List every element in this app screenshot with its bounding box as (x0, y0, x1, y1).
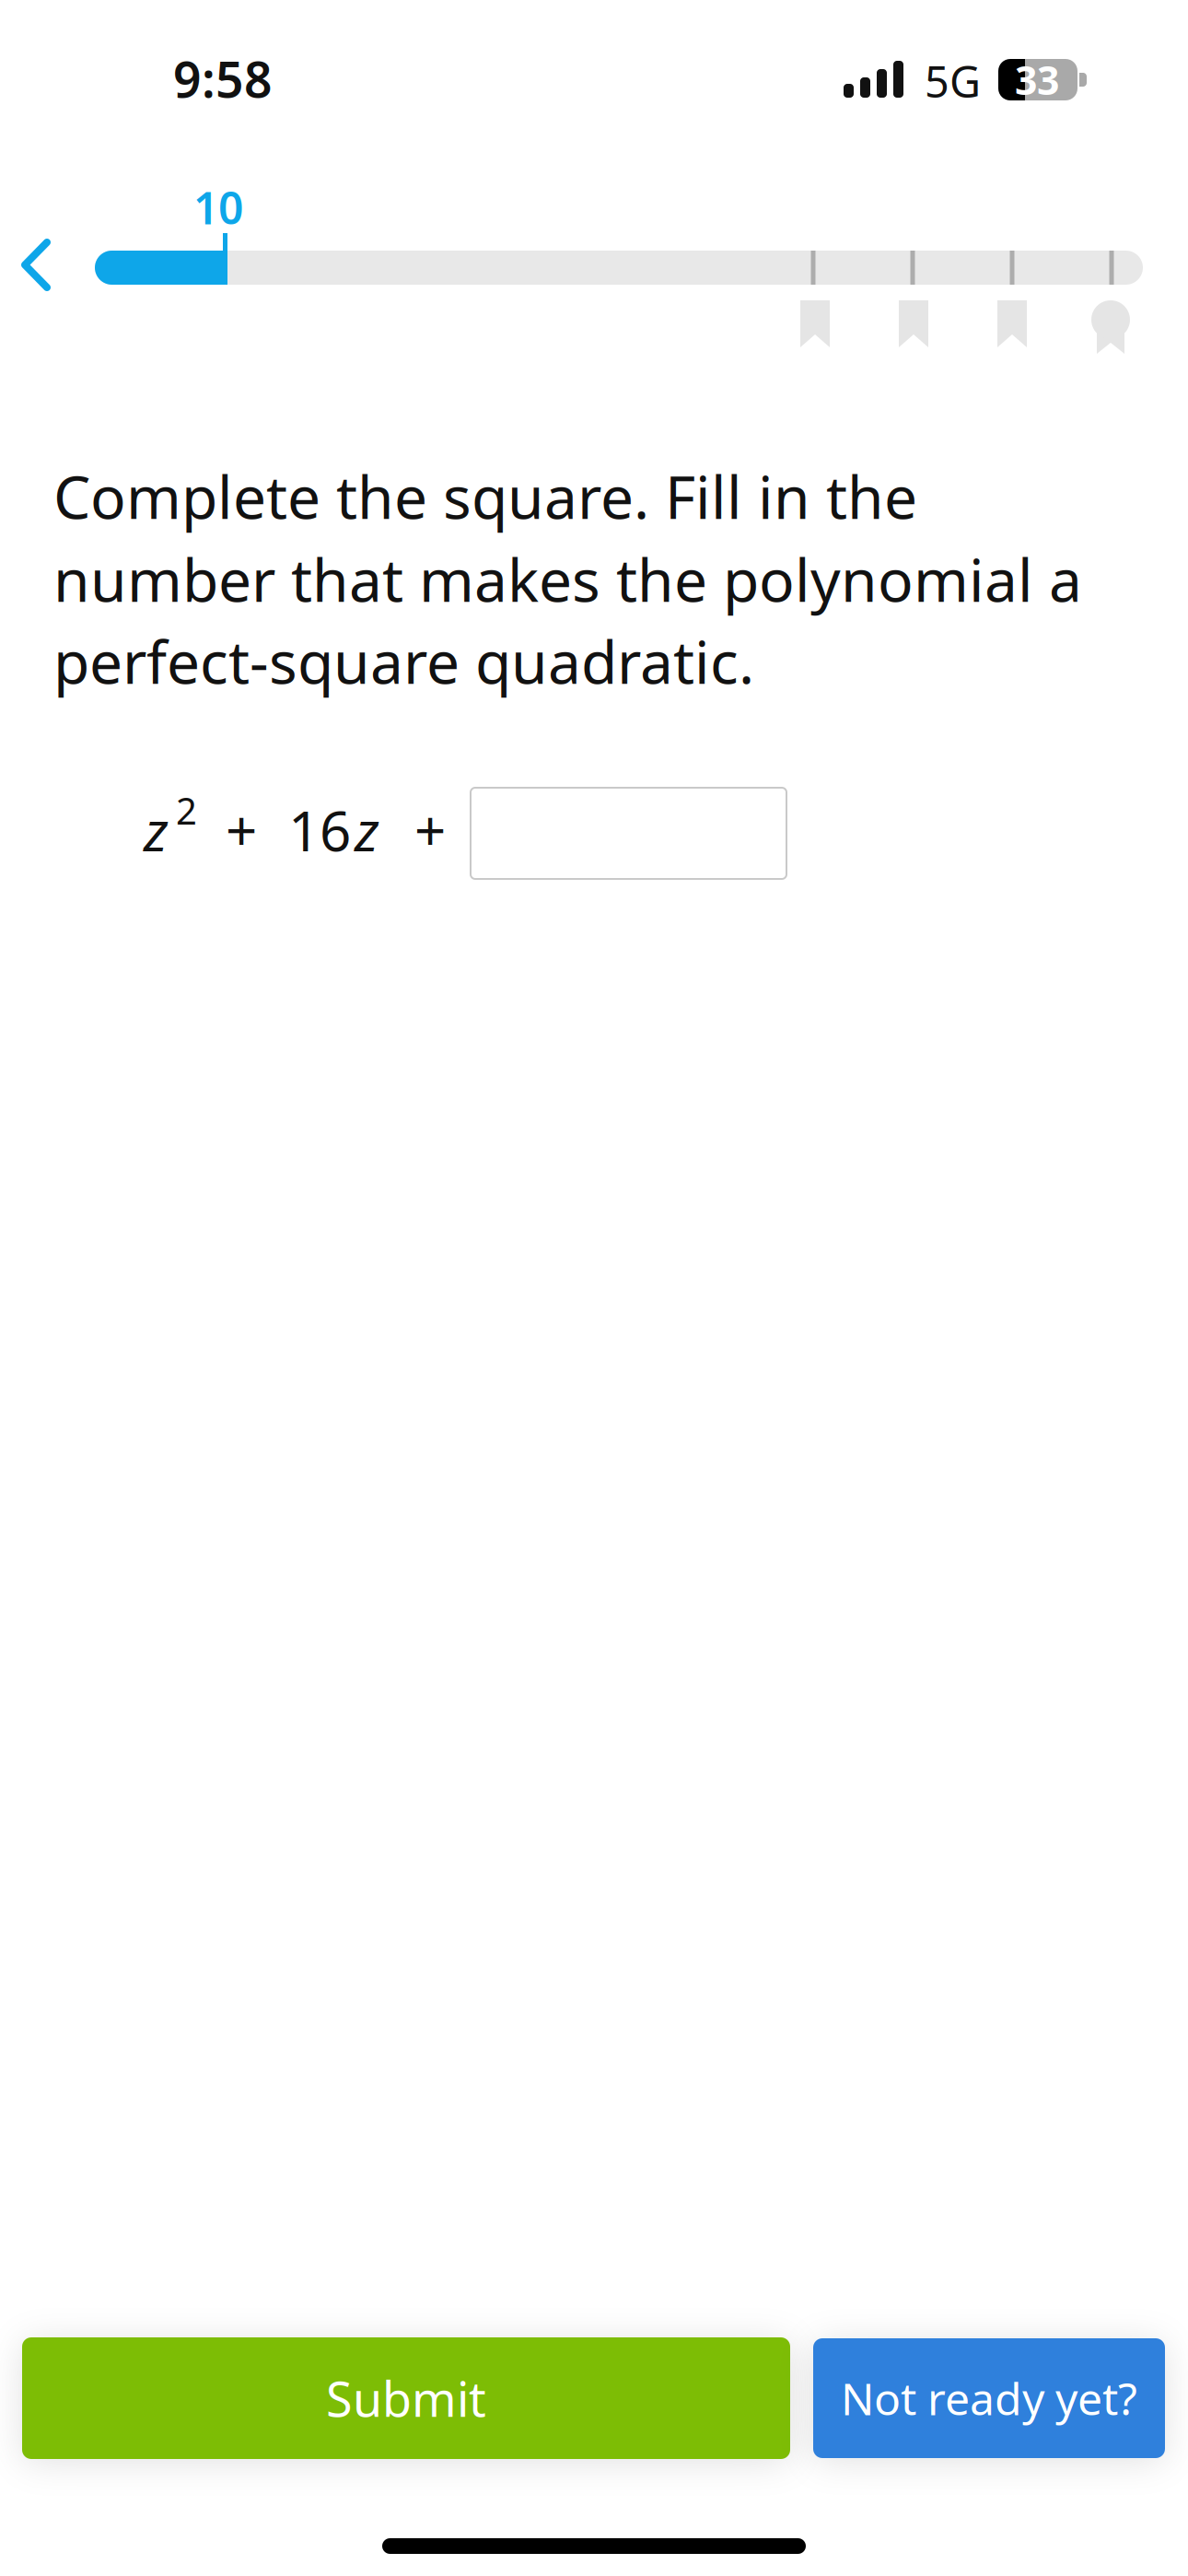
staticText: 33 (1015, 53, 1059, 106)
staticText: 9:58 (173, 46, 273, 111)
staticText: 10 (193, 178, 243, 237)
staticText: number that makes the polynomial a (53, 540, 1082, 618)
staticText: z (355, 793, 379, 867)
staticText: 5G (925, 53, 981, 110)
staticText: perfect-square quadratic. (53, 622, 754, 700)
staticText: Not ready yet? (841, 2369, 1137, 2427)
staticText: z (144, 793, 169, 867)
staticText: 16 (288, 793, 351, 867)
staticText: + (414, 793, 446, 867)
button[interactable]: Back (20, 238, 52, 293)
staticText: 2 (176, 786, 197, 835)
staticText: + (226, 793, 257, 867)
staticText: Submit (326, 2366, 486, 2430)
button[interactable]: Not ready yet? (813, 2338, 1165, 2458)
button[interactable]: Answer input (471, 788, 786, 879)
staticText: Complete the square. Fill in the (53, 457, 917, 535)
button[interactable]: Submit (22, 2337, 790, 2459)
